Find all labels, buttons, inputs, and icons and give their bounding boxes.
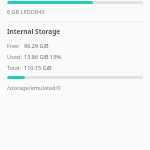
staticText: 110.15 GiB: [24, 64, 52, 71]
staticText: Free:: [7, 42, 24, 49]
button[interactable]: Used:: [7, 52, 143, 61]
staticText: 6 GB LPDDR4X: [7, 8, 45, 15]
button[interactable]: Free:: [7, 41, 143, 50]
staticText: Internal Storage: [7, 27, 61, 36]
button[interactable]: Internal Storage: [0, 27, 150, 36]
button[interactable]: Total:: [7, 63, 143, 72]
staticText: 96.29 GiB: [24, 42, 49, 49]
button[interactable]: Internal storage usage 13 percent: [0, 76, 150, 79]
staticText: Used:: [7, 53, 24, 60]
button[interactable]: /storage/emulated/0: [0, 84, 150, 91]
staticText: /storage/emulated/0: [7, 84, 61, 91]
button[interactable]: 6 GB LPDDR4X: [0, 8, 150, 15]
staticText: Total:: [7, 64, 24, 71]
staticText: 13.86 GiB 13%: [24, 53, 61, 60]
